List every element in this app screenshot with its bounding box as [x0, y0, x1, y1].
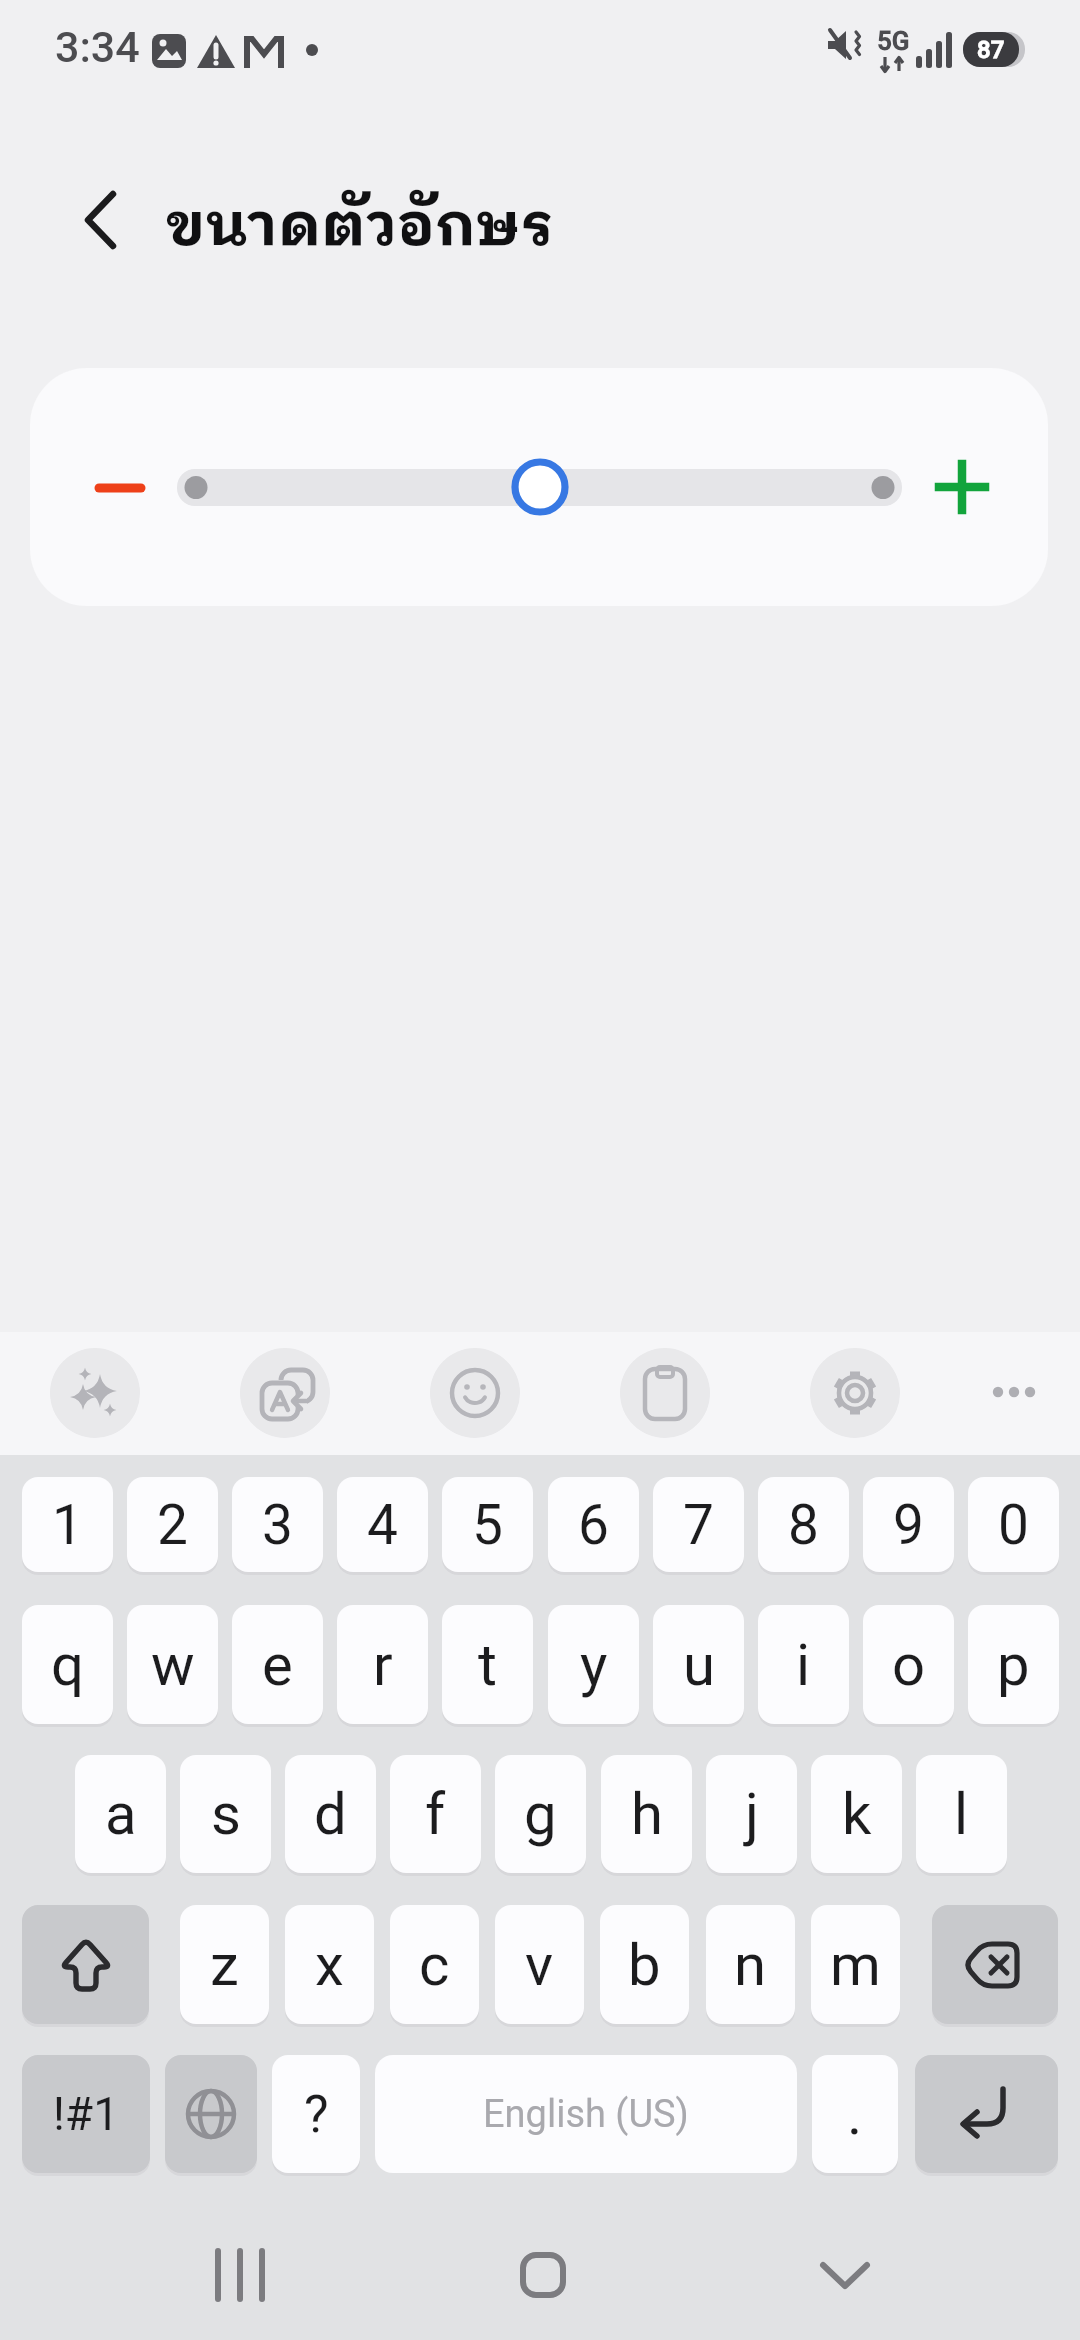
staticText: v — [525, 1931, 554, 1999]
staticText: z — [210, 1931, 239, 1999]
button[interactable]: l — [916, 1755, 1007, 1873]
button[interactable]: s — [180, 1755, 271, 1873]
button[interactable] — [790, 2230, 900, 2320]
button[interactable]: d — [285, 1755, 376, 1873]
button[interactable]: x — [285, 1905, 374, 2024]
button[interactable]: i — [758, 1605, 849, 1724]
staticText: h — [631, 1780, 663, 1848]
staticText: 1 — [52, 1493, 83, 1557]
staticText: 3 — [262, 1493, 293, 1557]
button[interactable]: q — [22, 1605, 113, 1724]
button[interactable]: 7 — [653, 1477, 744, 1572]
staticText: 4 — [367, 1493, 398, 1557]
button[interactable]: 9 — [863, 1477, 954, 1572]
staticText: b — [628, 1931, 661, 1999]
staticText: s — [211, 1780, 241, 1848]
staticText: x — [315, 1931, 344, 1999]
button[interactable]: 1 — [22, 1477, 113, 1572]
button[interactable]: j — [706, 1755, 797, 1873]
button[interactable] — [932, 1905, 1058, 2024]
button[interactable]: g — [495, 1755, 586, 1873]
button[interactable]: . — [812, 2055, 898, 2173]
staticText: d — [314, 1780, 347, 1848]
staticText: 5G — [877, 26, 910, 56]
staticText: j — [745, 1780, 759, 1848]
staticText: 9 — [893, 1493, 924, 1557]
button[interactable]: e — [232, 1605, 323, 1724]
staticText: n — [734, 1931, 767, 1999]
button[interactable]: 8 — [758, 1477, 849, 1572]
staticText: t — [478, 1631, 497, 1699]
button[interactable]: w — [127, 1605, 218, 1724]
button[interactable] — [180, 2230, 300, 2320]
staticText: e — [262, 1631, 293, 1699]
button[interactable] — [165, 2055, 257, 2173]
button[interactable]: 2 — [127, 1477, 218, 1572]
button[interactable]: y — [548, 1605, 639, 1724]
button[interactable]: 3 — [232, 1477, 323, 1572]
button[interactable]: p — [968, 1605, 1059, 1724]
staticText: 3:34 — [55, 22, 140, 72]
staticText: w — [151, 1631, 195, 1699]
button[interactable] — [915, 2055, 1058, 2173]
button[interactable]: m — [811, 1905, 900, 2024]
button[interactable]: a — [75, 1755, 166, 1873]
button[interactable] — [50, 1348, 140, 1438]
staticText: o — [892, 1631, 926, 1699]
button[interactable] — [974, 1352, 1054, 1432]
staticText: g — [524, 1780, 557, 1848]
button[interactable] — [240, 1348, 330, 1438]
staticText: a — [105, 1780, 137, 1848]
button[interactable]: 6 — [548, 1477, 639, 1572]
staticText: i — [796, 1631, 811, 1699]
staticText: 87 — [977, 36, 1005, 64]
staticText: ขนาดตัวอักษร — [166, 179, 554, 276]
button[interactable]: z — [180, 1905, 269, 2024]
button[interactable]: ? — [272, 2055, 360, 2173]
staticText: m — [830, 1931, 881, 1999]
button[interactable]: 4 — [337, 1477, 428, 1572]
button[interactable] — [22, 1905, 149, 2024]
staticText: 5 — [472, 1493, 503, 1557]
button[interactable]: o — [863, 1605, 954, 1724]
button[interactable] — [495, 2230, 591, 2320]
button[interactable]: n — [706, 1905, 795, 2024]
button[interactable] — [810, 1348, 900, 1438]
staticText: f — [425, 1780, 446, 1848]
button[interactable]: r — [337, 1605, 428, 1724]
button[interactable]: u — [653, 1605, 744, 1724]
button[interactable] — [505, 452, 575, 522]
staticText: c — [419, 1931, 450, 1999]
staticText: 8 — [788, 1493, 819, 1557]
staticText: 2 — [157, 1493, 188, 1557]
staticText: . — [847, 2080, 863, 2148]
button[interactable] — [75, 445, 165, 531]
button[interactable] — [430, 1348, 520, 1438]
staticText: !#1 — [53, 2087, 120, 2141]
button[interactable]: h — [601, 1755, 692, 1873]
button[interactable]: 0 — [968, 1477, 1059, 1572]
button[interactable]: !#1 — [22, 2055, 150, 2173]
staticText: 0 — [998, 1493, 1029, 1557]
staticText: 6 — [578, 1493, 609, 1557]
staticText: r — [373, 1631, 393, 1699]
staticText: k — [842, 1780, 872, 1848]
button[interactable]: c — [390, 1905, 479, 2024]
staticText: u — [683, 1631, 715, 1699]
staticText: l — [954, 1780, 969, 1848]
button[interactable]: 5 — [442, 1477, 533, 1572]
button[interactable]: English (US) — [375, 2055, 797, 2173]
button[interactable] — [70, 185, 130, 257]
staticText: English (US) — [483, 2092, 689, 2137]
staticText: y — [580, 1631, 608, 1699]
button[interactable]: t — [442, 1605, 533, 1724]
button[interactable] — [620, 1348, 710, 1438]
staticText: 7 — [683, 1493, 714, 1557]
button[interactable] — [917, 443, 1007, 531]
button[interactable]: k — [811, 1755, 902, 1873]
button[interactable]: f — [390, 1755, 481, 1873]
button[interactable]: v — [495, 1905, 584, 2024]
staticText: q — [51, 1631, 84, 1699]
staticText: p — [997, 1631, 1030, 1699]
button[interactable]: b — [600, 1905, 689, 2024]
